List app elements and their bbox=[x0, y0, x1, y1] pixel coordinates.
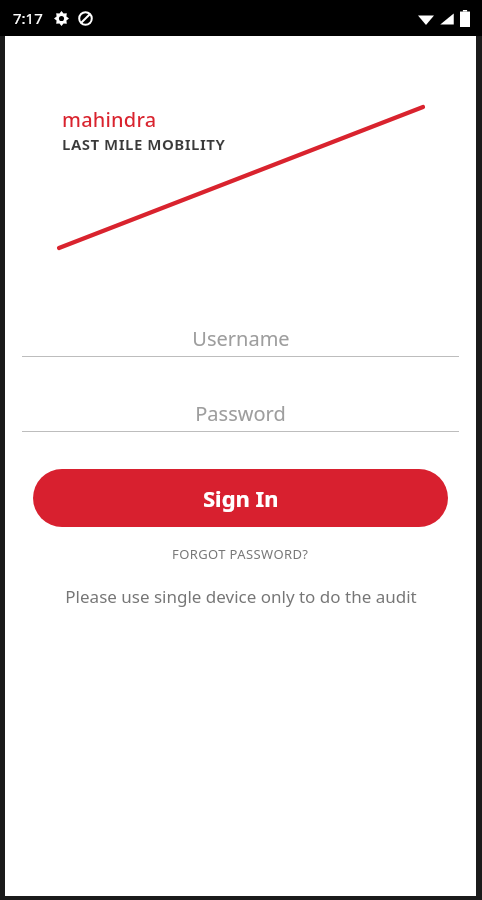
staticText: Password bbox=[195, 400, 286, 427]
button[interactable]: Password bbox=[22, 395, 459, 432]
staticText: Username bbox=[192, 325, 290, 352]
staticText: LAST MILE MOBILITY bbox=[62, 134, 226, 154]
staticText: mahindra bbox=[62, 106, 157, 133]
staticText: FORGOT PASSWORD? bbox=[172, 545, 309, 563]
button[interactable]: Username bbox=[22, 320, 459, 357]
button[interactable]: Sign In bbox=[33, 469, 448, 527]
staticText: Please use single device only to do the … bbox=[65, 585, 417, 608]
staticText: 7:17 bbox=[13, 8, 43, 28]
button[interactable]: FORGOT PASSWORD? bbox=[162, 541, 319, 567]
staticText: Sign In bbox=[203, 483, 279, 513]
